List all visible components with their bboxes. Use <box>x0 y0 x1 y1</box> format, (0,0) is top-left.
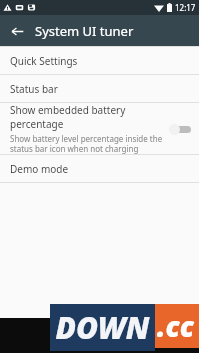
staticText: System UI tuner <box>35 22 134 40</box>
staticText: Demo mode <box>10 162 69 176</box>
staticText: Show battery level percentage inside the… <box>10 133 163 154</box>
staticText: .cc <box>157 307 194 345</box>
staticText: Status bar <box>10 82 58 96</box>
staticText: Show embedded battery percentage <box>10 103 165 131</box>
button[interactable]: Show embedded battery percentage <box>0 103 199 154</box>
staticText: Quick Settings <box>10 54 78 68</box>
button[interactable]: Show embedded battery percentage toggle <box>169 122 192 136</box>
button[interactable]: Status bar <box>0 75 199 102</box>
button[interactable]: Demo mode <box>0 155 199 182</box>
button[interactable]: Quick Settings <box>0 47 199 74</box>
button[interactable]: Back <box>6 20 28 42</box>
staticText: DOWN <box>55 307 150 348</box>
staticText: 12:17 <box>175 2 196 13</box>
